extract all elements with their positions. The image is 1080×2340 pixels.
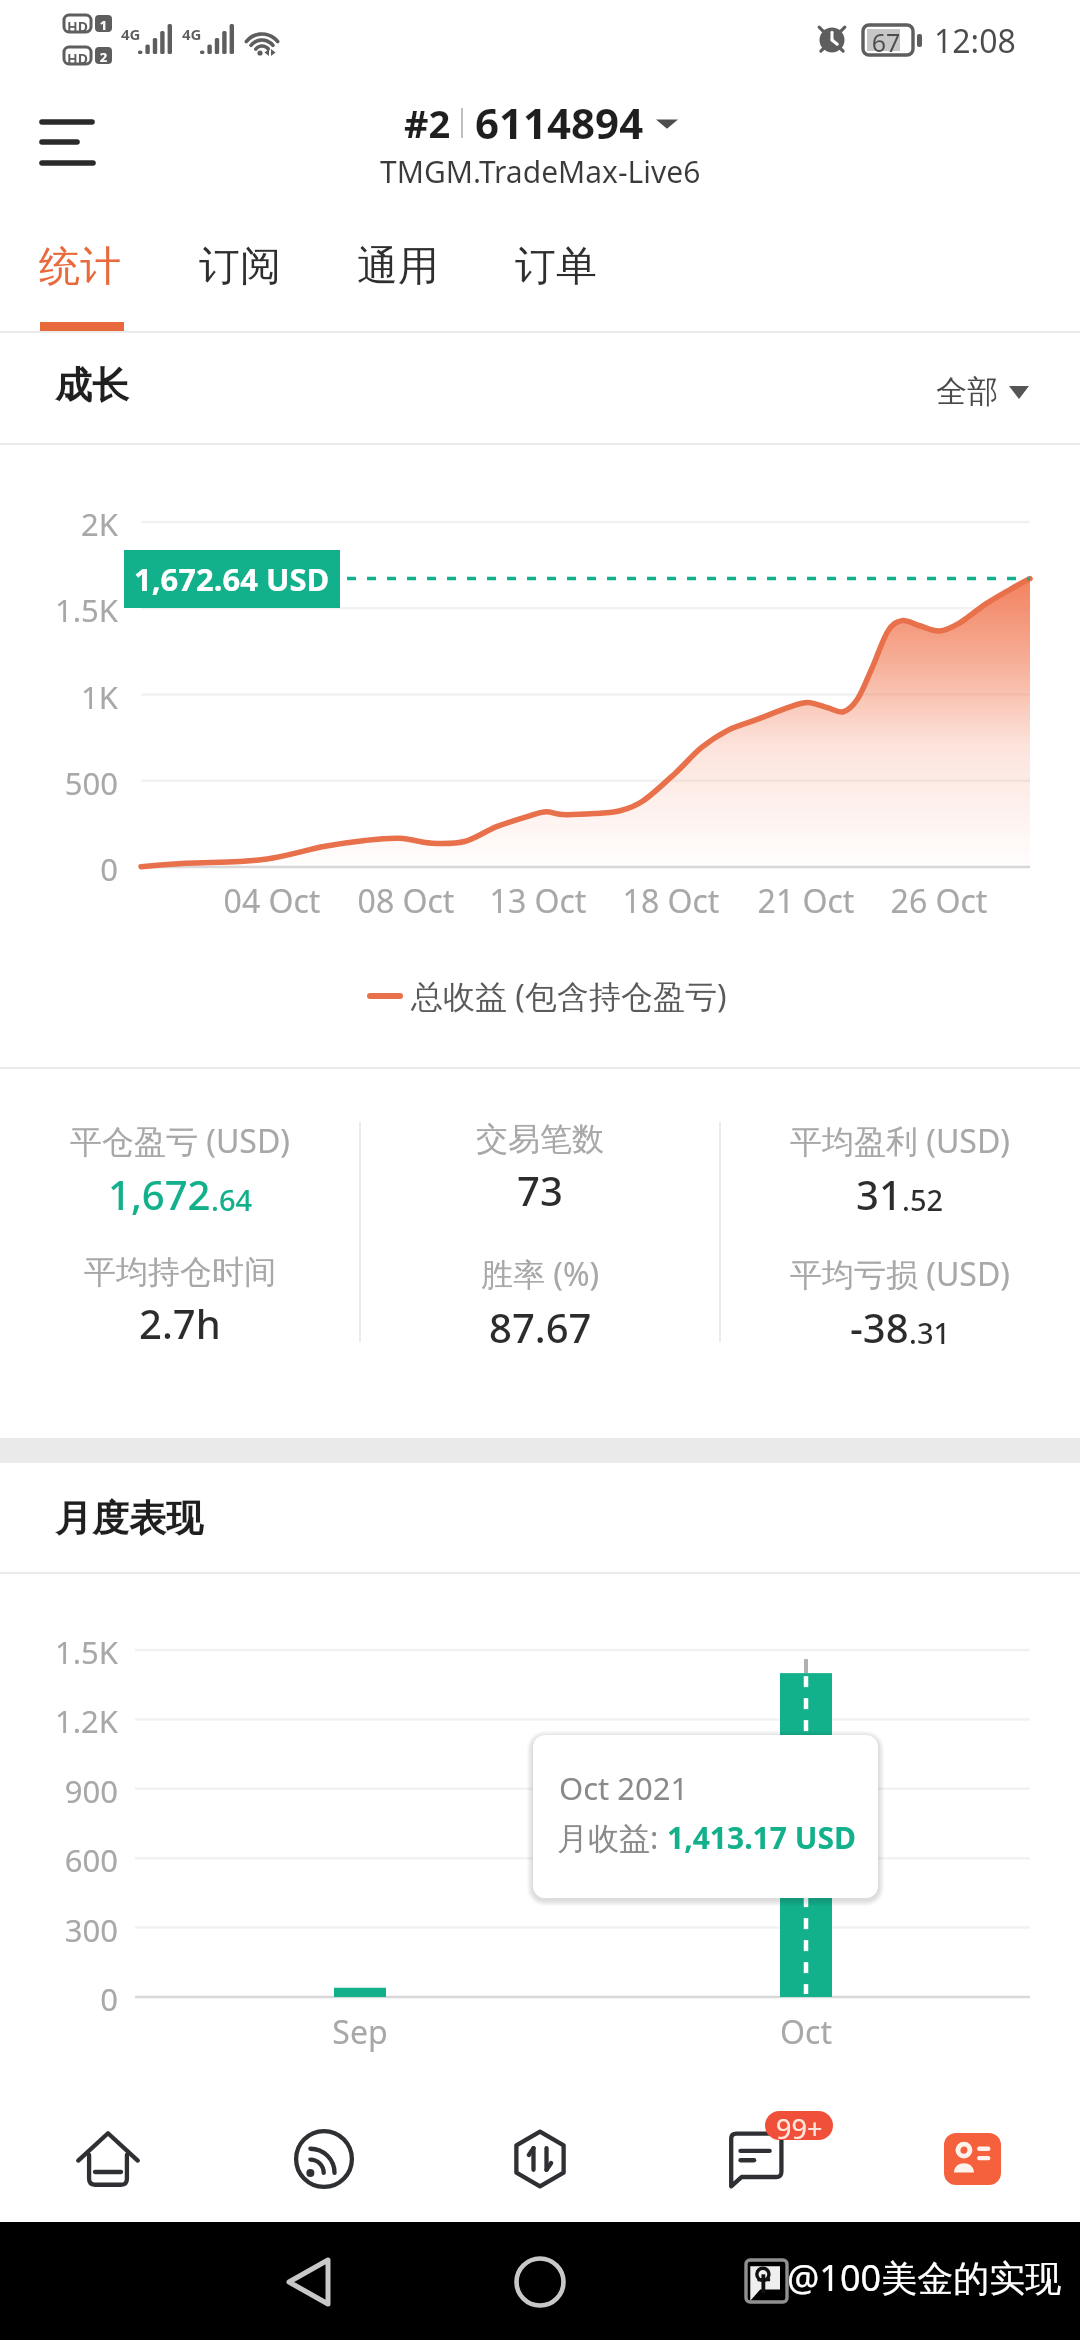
staticText: 平均持仓时间 xyxy=(84,1252,276,1292)
staticText: .31 xyxy=(909,1313,951,1352)
staticText: 2 xyxy=(95,48,112,66)
button[interactable]: Home xyxy=(500,2242,580,2322)
staticText: 0 xyxy=(0,848,118,890)
staticText: #2 xyxy=(404,97,451,149)
staticText: -38 xyxy=(850,1300,909,1354)
button[interactable]: Accounts xyxy=(864,2106,1080,2222)
staticText: 04 Oct xyxy=(172,879,372,923)
staticText: 成长 xyxy=(55,362,129,409)
staticText: 1,413.17 USD xyxy=(667,1817,856,1858)
staticText: 13 Oct xyxy=(438,879,638,923)
staticText: 26 Oct xyxy=(839,879,1039,923)
staticText: .52 xyxy=(902,1180,944,1219)
staticText: 1,672 xyxy=(108,1167,211,1221)
staticText: 订阅 xyxy=(199,241,281,293)
staticText: 500 xyxy=(0,762,118,804)
staticText: Oct xyxy=(706,2010,906,2054)
button[interactable]: 订阅 xyxy=(160,203,319,331)
staticText: 交易笔数 xyxy=(476,1119,604,1159)
staticText: 平均亏损 (USD) xyxy=(790,1252,1010,1296)
staticText: 2.7h xyxy=(139,1296,221,1350)
staticText: 1.5K xyxy=(0,1631,118,1673)
staticText: Sep xyxy=(260,2010,460,2054)
staticText: 67 xyxy=(861,25,911,59)
staticText: 08 Oct xyxy=(306,879,506,923)
staticText: 全部 xyxy=(936,372,998,411)
staticText: 通用 xyxy=(357,241,439,293)
staticText: Oct 2021 xyxy=(559,1767,689,1809)
staticText: 1.2K xyxy=(0,1700,118,1742)
staticText: 73 xyxy=(517,1163,563,1217)
staticText: 胜率 (%) xyxy=(481,1252,600,1296)
staticText: 18 Oct xyxy=(571,879,771,923)
staticText: 1.5K xyxy=(0,589,118,631)
staticText: 统计 xyxy=(39,241,121,293)
staticText: 4G xyxy=(182,24,202,44)
staticText: .64 xyxy=(211,1180,253,1219)
staticText: 4G xyxy=(121,24,141,44)
staticText: 平仓盈亏 (USD) xyxy=(70,1119,290,1163)
staticText: @100美金的实现 xyxy=(787,2253,1062,2302)
staticText: 总收益 (包含持仓盈亏) xyxy=(411,974,727,1018)
staticText: 31 xyxy=(856,1167,902,1221)
staticText: 月度表现 xyxy=(55,1495,203,1542)
button[interactable]: 全部 xyxy=(920,353,1044,423)
staticText: 900 xyxy=(0,1770,118,1812)
button[interactable]: Back xyxy=(270,2242,350,2322)
staticText: 600 xyxy=(0,1839,118,1881)
staticText: 0 xyxy=(0,1978,118,2020)
staticText: HD xyxy=(64,49,91,68)
staticText: 99+ xyxy=(776,2111,823,2139)
staticText: HD xyxy=(64,17,91,36)
staticText: 平均盈利 (USD) xyxy=(790,1119,1010,1163)
staticText: TMGM.TradeMax-Live6 xyxy=(380,151,701,192)
staticText: 订单 xyxy=(515,241,597,293)
staticText: 87.67 xyxy=(489,1300,592,1354)
button[interactable]: 通用 xyxy=(319,203,477,331)
staticText: 1,672.64 USD xyxy=(134,558,330,600)
button[interactable]: Menu xyxy=(30,107,106,177)
staticText: 300 xyxy=(0,1909,118,1951)
button[interactable]: Signals xyxy=(216,2106,432,2222)
staticText: 1K xyxy=(0,676,118,718)
staticText: 12:08 xyxy=(934,19,1016,63)
button[interactable]: 订单 xyxy=(477,203,635,331)
button[interactable]: 统计 xyxy=(0,203,160,331)
button[interactable]: Messages xyxy=(648,2106,864,2222)
staticText: 2K xyxy=(0,503,118,545)
staticText: 月收益: xyxy=(557,1816,667,1858)
staticText: 1 xyxy=(95,16,112,34)
button[interactable]: Trade xyxy=(432,2106,648,2222)
staticText: 21 Oct xyxy=(706,879,906,923)
staticText: 6114894 xyxy=(475,94,644,151)
button[interactable]: Home xyxy=(0,2106,216,2222)
